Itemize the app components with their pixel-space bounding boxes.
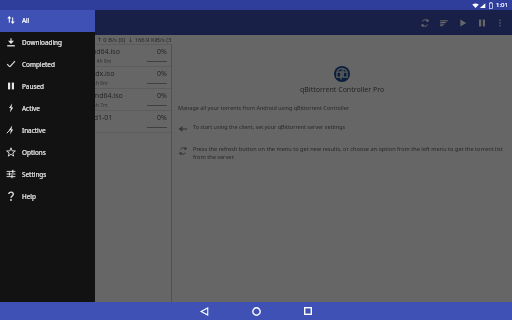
button[interactable]: Inactive: [0, 120, 95, 142]
button[interactable]: Recents: [282, 302, 334, 320]
staticText: All: [22, 16, 30, 25]
button[interactable]: More options: [492, 10, 508, 35]
staticText: 0 B of 2.75 GiB (0.0%) · Downloading · 5…: [4, 80, 147, 87]
staticText: debian-live-10.6.0-amd64-stdx.iso: [4, 69, 155, 79]
staticText: To start using the client, set your qBit…: [193, 123, 346, 130]
staticText: Active: [22, 104, 40, 113]
button[interactable]: Paused: [0, 76, 95, 98]
staticText: 1:01: [496, 1, 508, 9]
button[interactable]: Home: [230, 302, 282, 320]
staticText: Paused: [22, 82, 44, 91]
button[interactable]: Sort: [434, 10, 453, 35]
button[interactable]: linuxmint-20.1-cinnamon-amd64.iso: [0, 89, 171, 111]
button[interactable]: Settings: [0, 164, 95, 186]
staticText: 0 B of 1.95 GiB (0.0%) · Downloading · 6…: [4, 102, 147, 109]
staticText: Downloading: [22, 38, 62, 47]
staticText: Manage all your torrents from Android us…: [178, 104, 349, 111]
staticText: Completed: [22, 60, 55, 69]
staticText: [4, 124, 147, 131]
staticText: 0 B of 912.0 MiB (0.0%) · Downloading · …: [4, 58, 147, 65]
staticText: 0%: [157, 113, 167, 123]
staticText: qBittorrent Controller Pro: [300, 85, 385, 95]
staticText: linuxmint-20.1-cinnamon-amd64.iso: [4, 91, 155, 101]
staticText: 0%: [157, 47, 167, 57]
staticText: Help: [22, 192, 36, 201]
button[interactable]: Resume: [453, 10, 472, 35]
button[interactable]: debian-live-10.6.0-amd64-stdx.iso: [0, 67, 171, 89]
staticText: ↑ 0 B/s (0) ↓ 166.9 KiB/s (3): [97, 36, 171, 44]
button[interactable]: ubuntu-20.04.1-live-svr2-amd64.iso: [0, 45, 171, 67]
button[interactable]: All: [0, 10, 95, 32]
button[interactable]: Options: [0, 142, 95, 164]
staticText: Press the refresh button on the menu to …: [193, 145, 506, 161]
staticText: Settings: [22, 170, 47, 179]
button[interactable]: Refresh: [415, 10, 434, 35]
staticText: 0%: [157, 69, 167, 79]
staticText: Options: [22, 148, 46, 157]
button[interactable]: Pause: [472, 10, 492, 35]
staticText: CentOS-8.2.2004-x86_64-dvd1-01: [4, 113, 155, 123]
button[interactable]: CentOS-8.2.2004-x86_64-dvd1-01: [0, 111, 171, 133]
staticText: Inactive: [22, 126, 46, 135]
button[interactable]: Downloading: [0, 32, 95, 54]
button[interactable]: Active: [0, 98, 95, 120]
button[interactable]: Completed: [0, 54, 95, 76]
button[interactable]: Back: [178, 302, 230, 320]
staticText: ubuntu-20.04.1-live-svr2-amd64.iso: [4, 47, 155, 57]
button[interactable]: Help: [0, 186, 95, 208]
staticText: 0%: [157, 91, 167, 101]
